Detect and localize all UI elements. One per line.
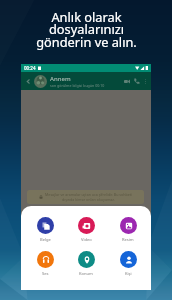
staticText: Video xyxy=(81,237,92,243)
staticText: Ses xyxy=(42,271,49,277)
button[interactable]: Resim xyxy=(110,217,146,243)
staticText: Anlık olarak dosyalarınızı gönderin ve a… xyxy=(36,8,137,51)
button[interactable]: Konum xyxy=(68,251,104,277)
button[interactable]: Belge xyxy=(27,217,63,243)
button[interactable]: Video xyxy=(68,217,104,243)
button[interactable]: More options xyxy=(142,78,149,85)
button[interactable]: Video call xyxy=(122,76,132,86)
staticText: Kişi xyxy=(125,271,132,277)
staticText: 00:24 xyxy=(24,65,36,71)
button[interactable]: Call xyxy=(132,76,142,86)
staticText: son görülme bilgisi bugün 00:10 xyxy=(50,83,105,88)
button[interactable]: Kişi xyxy=(110,251,146,277)
staticText: Mesajlar ve aramalar uçtan uca şifrelidi… xyxy=(45,192,132,202)
staticText: Annem xyxy=(50,75,71,83)
staticText: Konum xyxy=(79,271,93,277)
staticText: Resim xyxy=(122,237,134,243)
staticText: Belge xyxy=(40,237,51,243)
button[interactable]: Ses xyxy=(27,251,63,277)
button[interactable]: Back xyxy=(24,77,33,86)
